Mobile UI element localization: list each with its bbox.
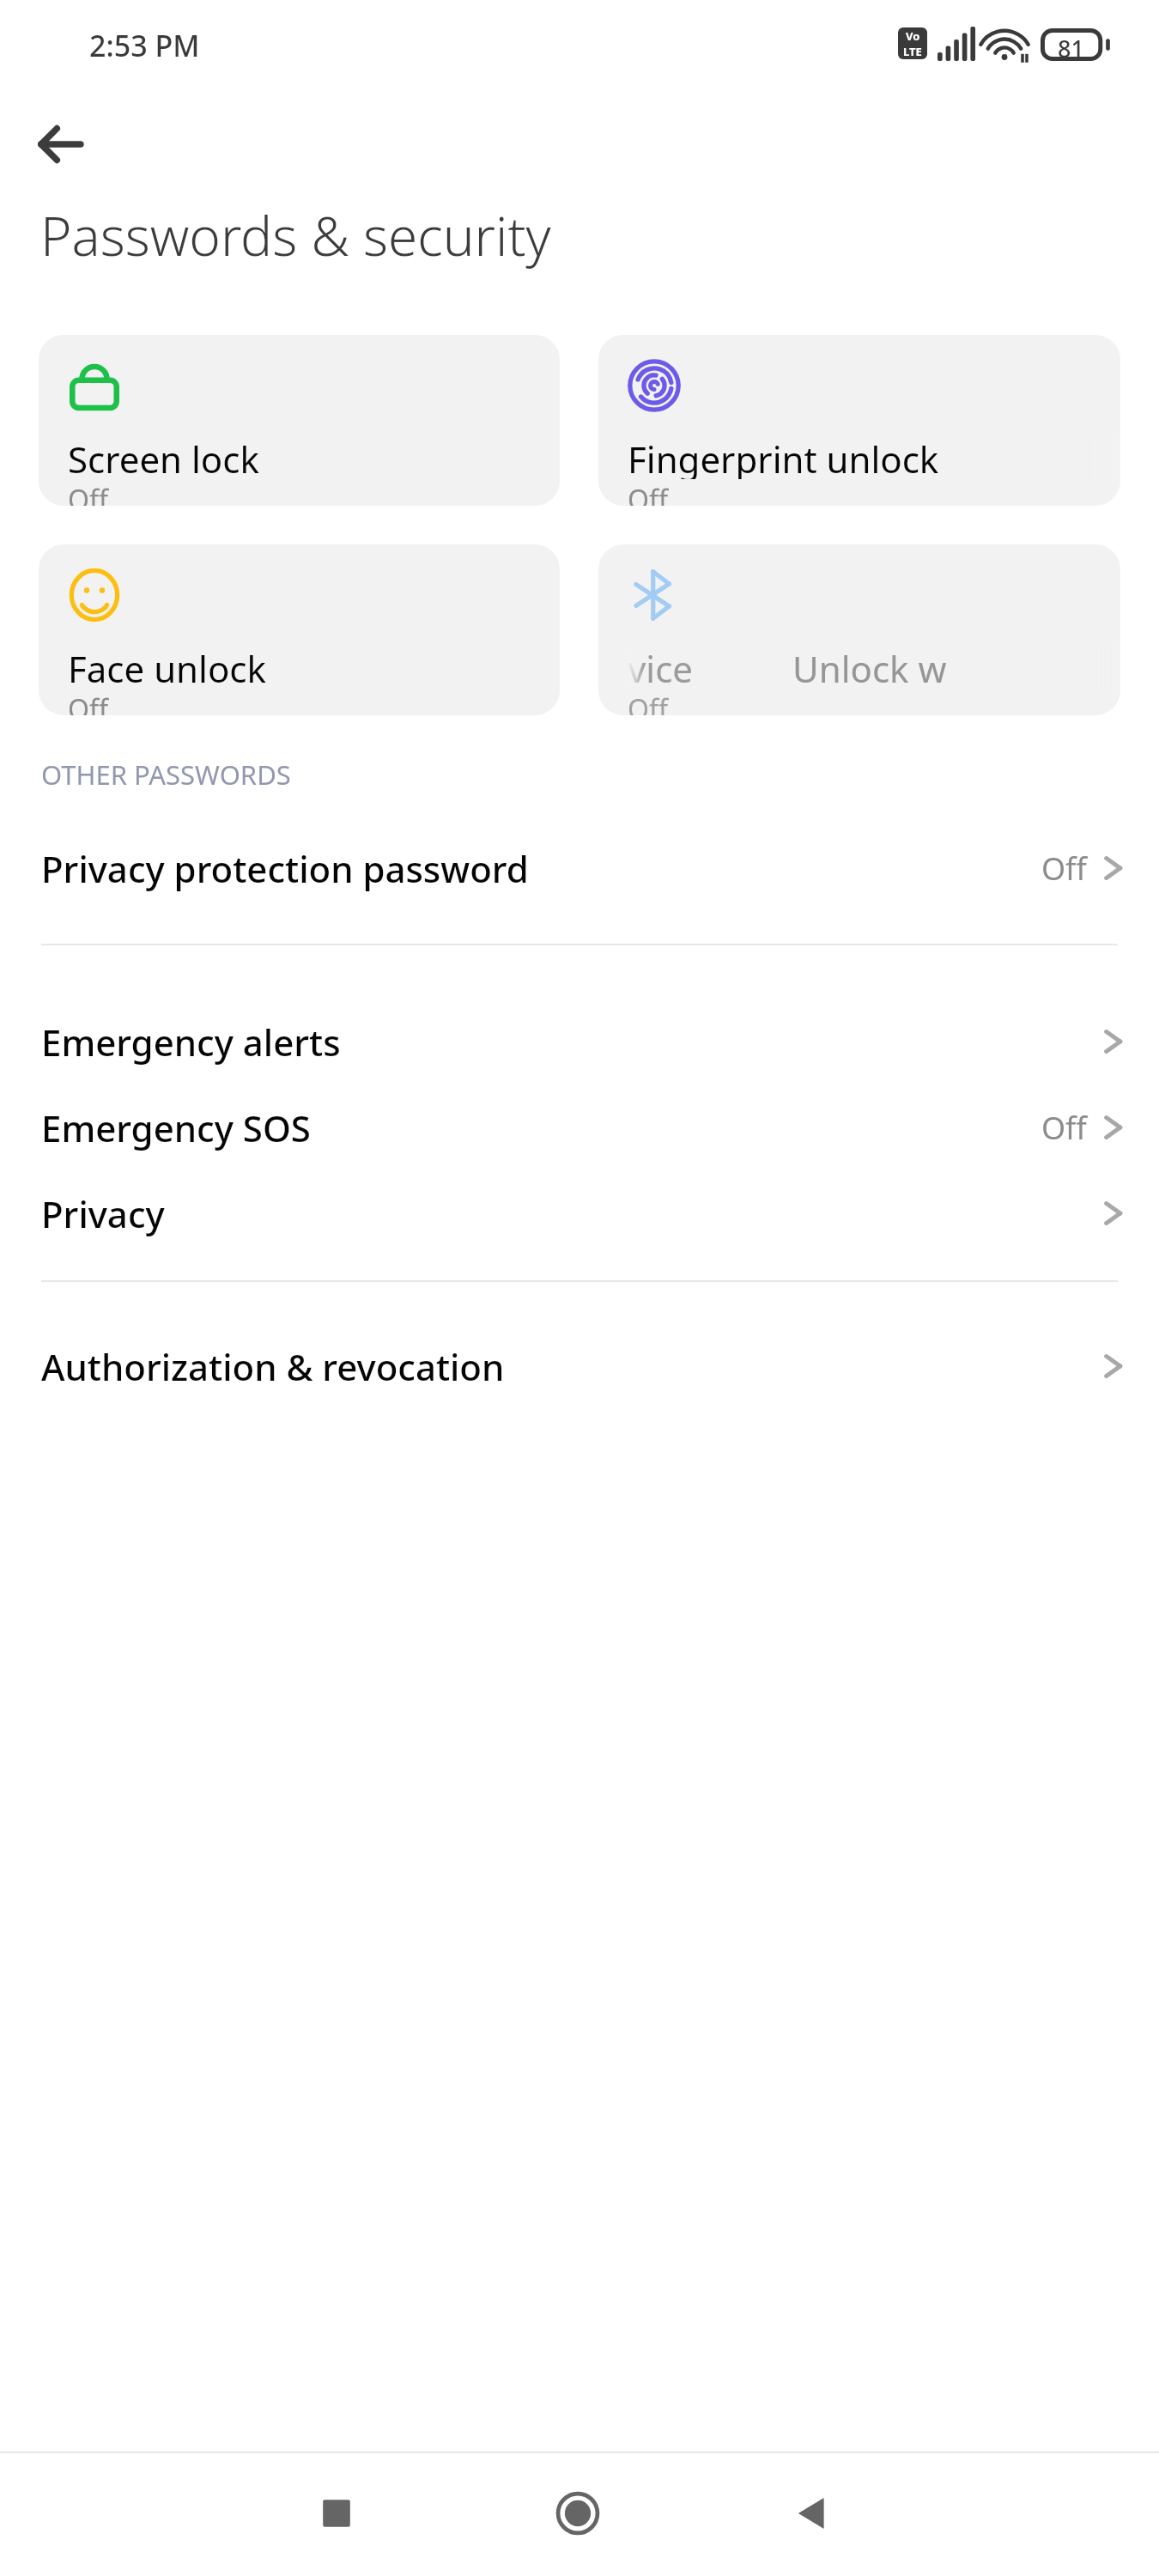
staticText: Vo <box>906 28 920 44</box>
button[interactable]: Screen lock <box>39 335 560 506</box>
staticText: Off <box>628 481 669 506</box>
staticText: Passwords & security <box>40 199 551 271</box>
staticText: Privacy protection password <box>41 844 1041 893</box>
staticText: Screen lock <box>68 434 259 479</box>
staticText: Emergency alerts <box>41 1018 1102 1066</box>
staticText: Fingerprint unlock <box>628 434 939 479</box>
button[interactable]: vice <box>598 544 1120 715</box>
button[interactable]: Back <box>21 105 100 184</box>
staticText: Unlock w <box>792 644 947 689</box>
staticText: 81 <box>1058 33 1084 64</box>
button[interactable]: Emergency SOS <box>0 1084 1159 1170</box>
button[interactable]: Emergency alerts <box>0 999 1159 1084</box>
staticText: 2:53 PM <box>89 26 200 65</box>
staticText: LTE <box>903 44 922 59</box>
button[interactable]: Home <box>525 2460 631 2567</box>
button[interactable]: Privacy <box>0 1170 1159 1256</box>
staticText: Off <box>68 481 109 506</box>
staticText: Privacy <box>41 1189 1102 1238</box>
staticText: OTHER PASSWORDS <box>41 756 291 793</box>
button[interactable]: Back <box>758 2460 865 2567</box>
staticText: Off <box>628 690 669 715</box>
button[interactable]: Recent apps <box>283 2460 390 2567</box>
staticText: Off <box>1041 848 1087 890</box>
staticText: Off <box>1041 1107 1087 1149</box>
button[interactable]: Privacy protection password <box>0 825 1159 911</box>
staticText: Authorization & revocation <box>41 1342 1102 1391</box>
staticText: Emergency SOS <box>41 1103 1041 1152</box>
button[interactable]: Face unlock <box>39 544 560 715</box>
button[interactable]: Authorization & revocation <box>0 1323 1159 1409</box>
button[interactable]: Fingerprint unlock <box>598 335 1120 506</box>
staticText: vice <box>628 644 694 689</box>
staticText: Off <box>68 690 109 715</box>
staticText: Face unlock <box>68 644 266 689</box>
